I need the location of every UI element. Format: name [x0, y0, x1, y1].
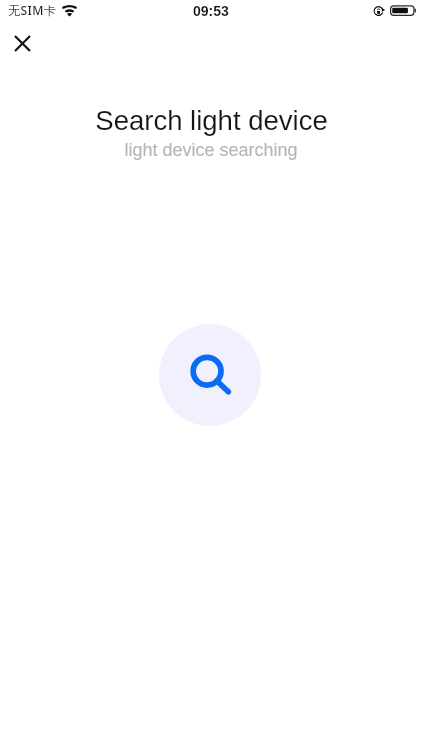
- button[interactable]: Searching for devices: [159, 324, 261, 426]
- staticText: 无SIM卡: [8, 2, 57, 19]
- staticText: Search light device: [95, 105, 328, 136]
- staticText: light device searching: [124, 140, 298, 160]
- button[interactable]: Close: [7, 28, 38, 59]
- staticText: 09:53: [193, 3, 229, 19]
